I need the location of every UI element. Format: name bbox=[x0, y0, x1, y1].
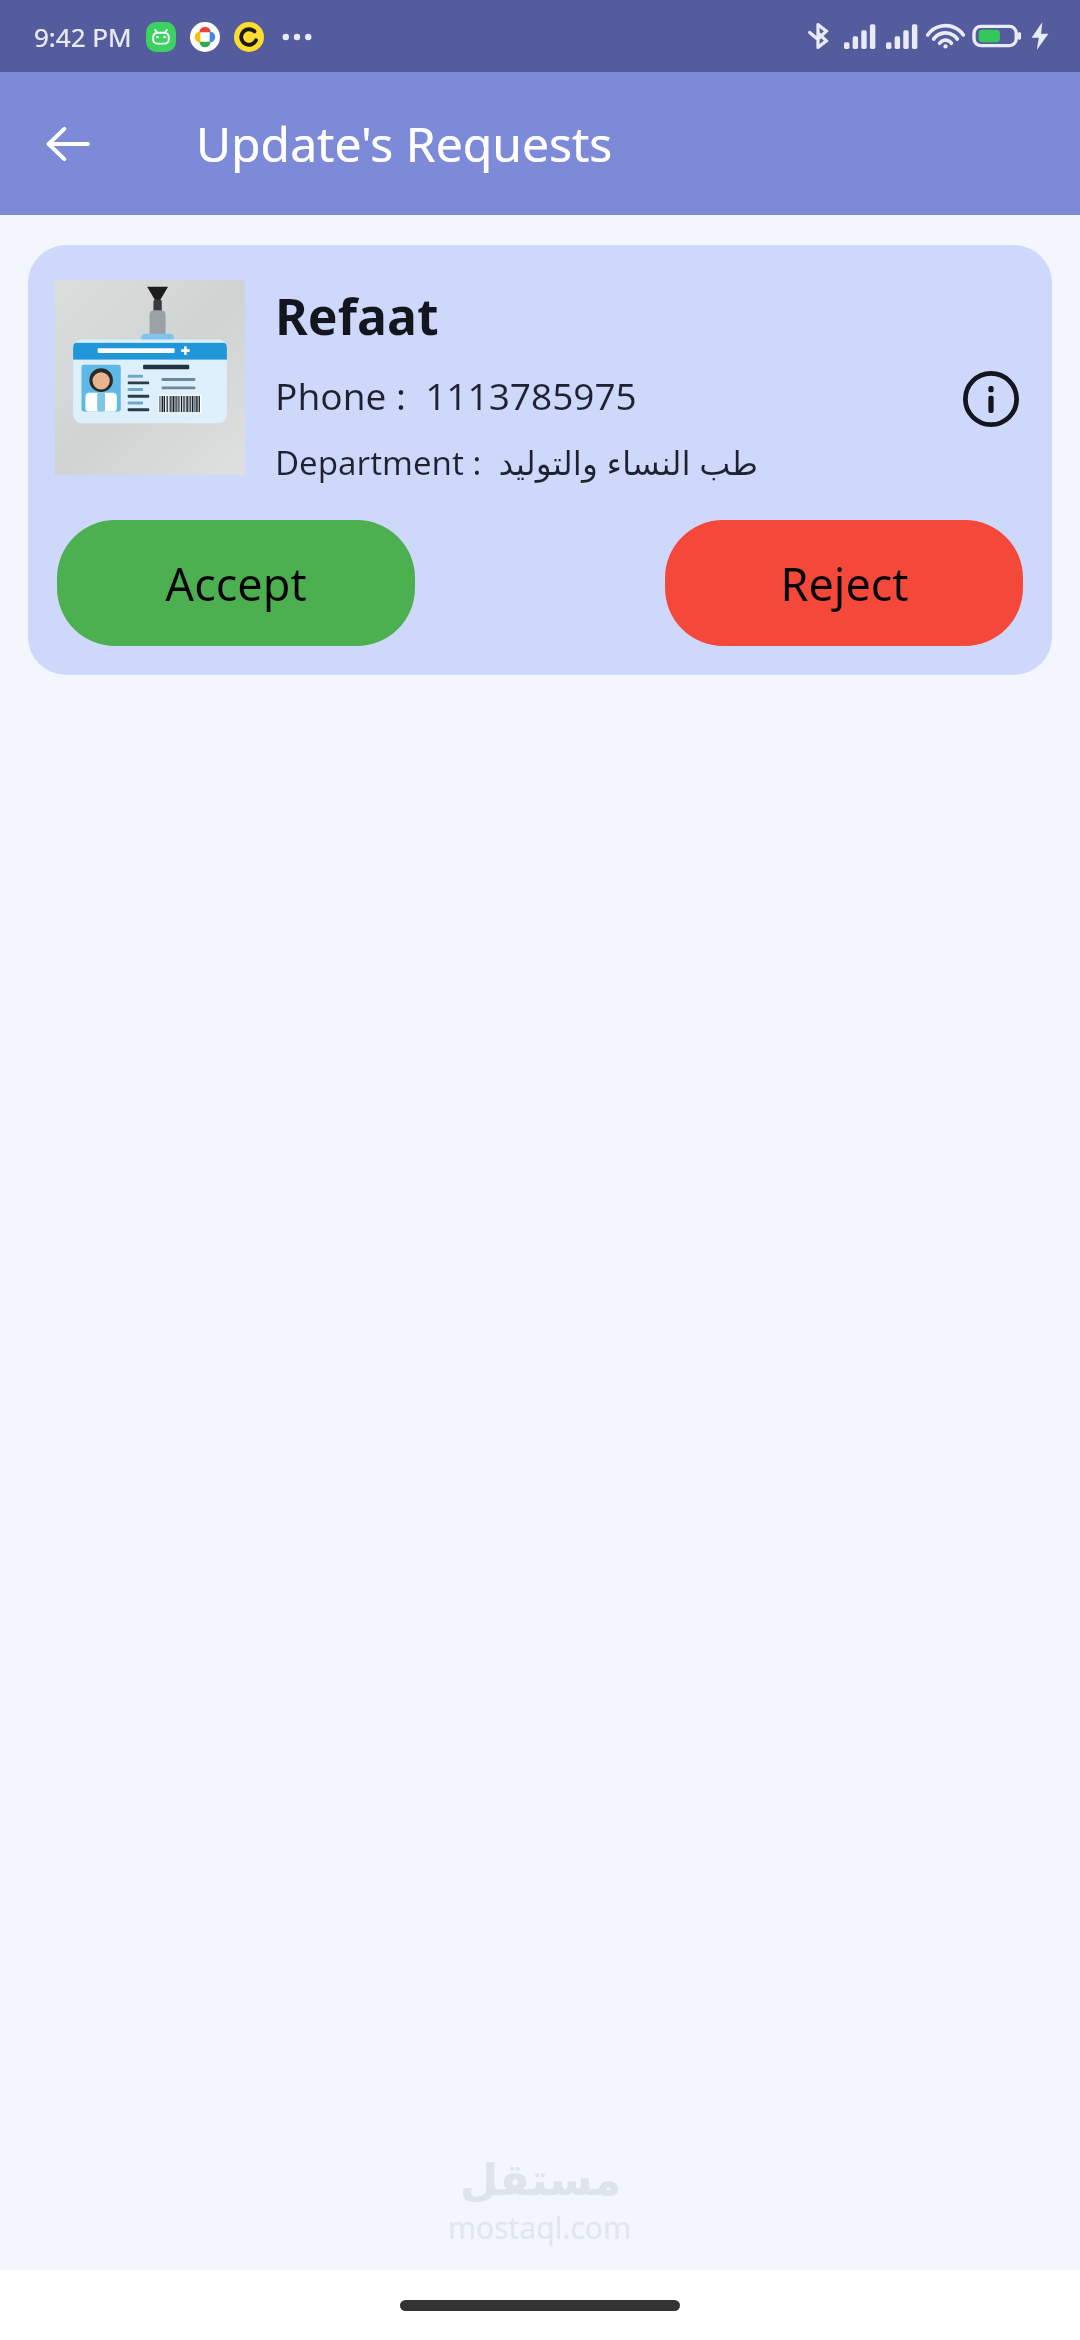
staticText: مستقل bbox=[460, 2154, 621, 2205]
button[interactable]: Reject bbox=[665, 520, 1023, 646]
staticText: mostaql.com bbox=[448, 2207, 632, 2248]
staticText: Phone : 1113785975 bbox=[275, 370, 637, 420]
staticText: Refaat bbox=[275, 282, 439, 350]
staticText: 9:42 PM bbox=[34, 19, 132, 54]
button[interactable]: Accept bbox=[57, 520, 415, 646]
staticText: Department : طب النساء والتوليد bbox=[275, 440, 758, 485]
button[interactable]: Refaat bbox=[28, 245, 1052, 675]
button[interactable]: Info bbox=[954, 362, 1028, 436]
staticText: Update's Requests bbox=[196, 111, 613, 176]
button[interactable]: Back bbox=[30, 106, 106, 182]
staticText: Accept bbox=[165, 553, 307, 614]
staticText: Reject bbox=[780, 553, 909, 614]
